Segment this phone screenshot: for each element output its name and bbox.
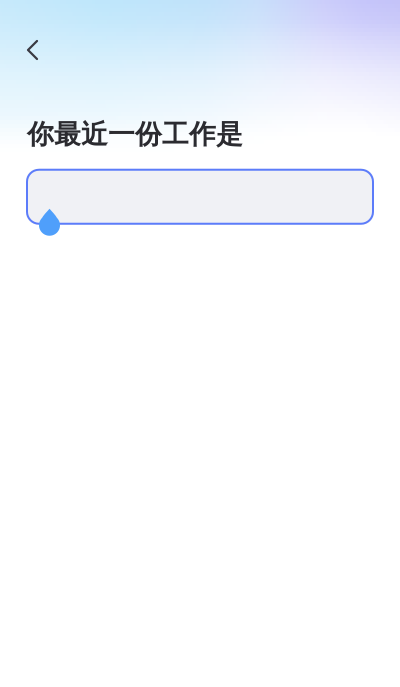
button[interactable]: Back: [0, 0, 55, 77]
staticText: 你最近一份工作是: [27, 118, 243, 151]
